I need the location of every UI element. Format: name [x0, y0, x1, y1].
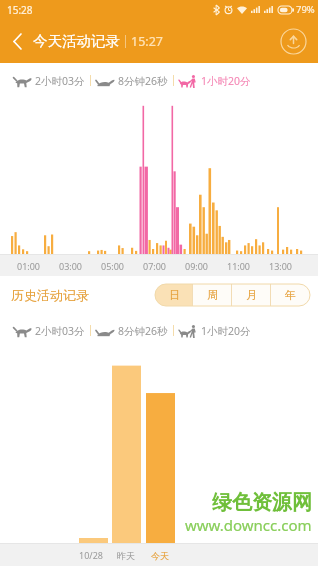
- button[interactable]: 2小时03分: [13, 74, 85, 88]
- button[interactable]: 8分钟26秒: [96, 324, 168, 338]
- staticText: 01:00: [17, 260, 41, 272]
- staticText: 13:00: [269, 260, 293, 272]
- button[interactable]: 2小时03分: [13, 324, 85, 338]
- staticText: 日: [169, 288, 180, 302]
- staticText: 2小时03分: [35, 74, 85, 88]
- staticText: 05:00: [101, 260, 125, 272]
- staticText: 1小时20分: [201, 74, 251, 88]
- button[interactable]: Upload: [280, 28, 307, 55]
- staticText: 11:00: [227, 260, 251, 272]
- staticText: 8分钟26秒: [118, 324, 168, 338]
- staticText: 15:28: [7, 3, 33, 17]
- staticText: 2小时03分: [35, 324, 85, 338]
- staticText: 绿色资源网: [212, 490, 312, 515]
- button[interactable]: Back: [0, 19, 33, 63]
- staticText: www.downcc.com: [185, 515, 312, 535]
- staticText: 10/28: [79, 549, 103, 561]
- staticText: 15:27: [131, 33, 163, 50]
- staticText: 09:00: [185, 260, 209, 272]
- staticText: 历史活动记录: [11, 287, 89, 303]
- button[interactable]: 周: [193, 284, 232, 306]
- staticText: 昨天: [117, 550, 135, 561]
- staticText: 年: [285, 288, 296, 302]
- staticText: 03:00: [59, 260, 83, 272]
- button[interactable]: 日: [155, 284, 193, 306]
- staticText: 07:00: [143, 260, 167, 272]
- staticText: 79%: [296, 3, 315, 16]
- button[interactable]: 1小时20分: [179, 74, 251, 88]
- staticText: 周: [207, 288, 218, 302]
- button[interactable]: 8分钟26秒: [96, 74, 168, 88]
- button[interactable]: 1小时20分: [179, 324, 251, 338]
- staticText: 今天活动记录: [33, 32, 120, 50]
- button[interactable]: 年: [271, 284, 310, 306]
- staticText: 今天: [151, 550, 169, 561]
- staticText: 8分钟26秒: [118, 74, 168, 88]
- button[interactable]: 月: [232, 284, 271, 306]
- staticText: 1小时20分: [201, 324, 251, 338]
- staticText: 月: [246, 288, 257, 302]
